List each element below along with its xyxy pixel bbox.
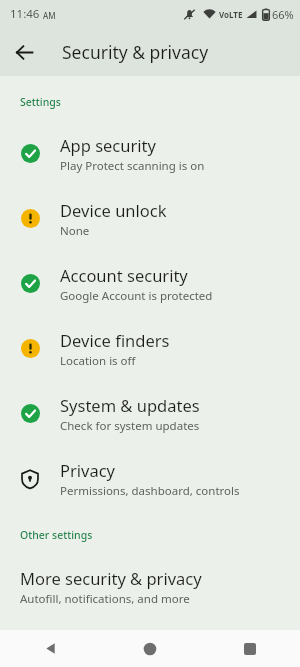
staticText: Device finders (60, 329, 170, 351)
staticText: Location is off (60, 353, 136, 369)
staticText: Settings (20, 95, 61, 109)
button[interactable]: Back (8, 36, 40, 68)
staticText: Check for system updates (60, 418, 200, 434)
button[interactable]: More security & privacy (0, 554, 300, 619)
staticText: Play Protect scanning is on (60, 158, 205, 174)
button[interactable]: Home (100, 630, 200, 667)
staticText: Account security (60, 264, 188, 286)
staticText: System & updates (60, 394, 200, 416)
button[interactable]: System & updates (0, 381, 300, 446)
staticText: 11:46 (10, 6, 40, 22)
button[interactable]: Account security (0, 251, 300, 316)
staticText: Autofill, notifications, and more (20, 591, 190, 607)
button[interactable]: Device unlock (0, 186, 300, 251)
staticText: Security & privacy (62, 40, 209, 64)
staticText: 66% (272, 7, 294, 22)
button[interactable]: App security (0, 121, 300, 186)
staticText: None (60, 223, 90, 239)
staticText: VoLTE (219, 9, 243, 20)
button[interactable]: Privacy (0, 446, 300, 511)
button[interactable]: Recent apps (200, 630, 300, 667)
staticText: Permissions, dashboard, controls (60, 483, 240, 499)
staticText: AM (43, 10, 56, 21)
staticText: Device unlock (60, 199, 167, 221)
staticText: Other settings (20, 528, 93, 542)
staticText: Privacy (60, 459, 116, 481)
button[interactable]: Device finders (0, 316, 300, 381)
button[interactable]: Back (0, 630, 100, 667)
staticText: Google Account is protected (60, 288, 213, 304)
staticText: App security (60, 134, 156, 156)
staticText: More security & privacy (20, 567, 202, 589)
